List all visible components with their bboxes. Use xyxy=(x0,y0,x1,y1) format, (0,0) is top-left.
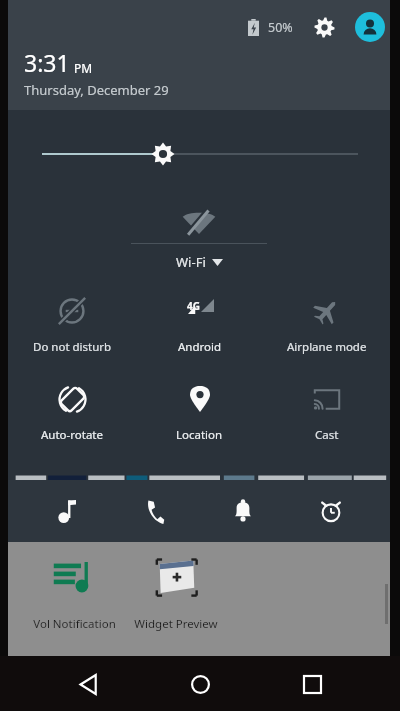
button[interactable]: User profile xyxy=(355,12,385,42)
staticText: 3:31 xyxy=(24,47,70,78)
button[interactable]: Airplane mode xyxy=(263,280,390,368)
button[interactable]: Widget Preview xyxy=(128,550,224,632)
staticText: Thursday, December 29 xyxy=(24,81,169,99)
button[interactable]: Home xyxy=(176,660,224,708)
button[interactable]: Call volume xyxy=(126,482,184,540)
staticText: Do not disturb xyxy=(33,339,112,355)
staticText: Android xyxy=(178,339,222,355)
staticText: Location xyxy=(176,427,223,443)
button[interactable]: Wi-Fi xyxy=(176,253,223,271)
button[interactable]: Battery 50 percent xyxy=(240,14,266,40)
button[interactable]: 3:31 xyxy=(24,47,169,99)
button[interactable]: Vol Notification xyxy=(26,550,122,632)
staticText: PM xyxy=(74,60,93,76)
staticText: Widget Preview xyxy=(134,616,218,632)
button[interactable]: Notification volume xyxy=(214,482,272,540)
staticText: 50% xyxy=(268,19,293,36)
staticText: Auto-rotate xyxy=(41,427,103,443)
button[interactable]: 4G xyxy=(136,280,263,368)
button[interactable]: Back xyxy=(64,660,112,708)
staticText: Wi-Fi xyxy=(176,253,206,271)
button[interactable]: Cast xyxy=(263,368,390,456)
button[interactable]: Auto-rotate xyxy=(8,368,136,456)
staticText: Cast xyxy=(315,427,339,443)
button[interactable]: Recent apps xyxy=(288,660,336,708)
staticText: Airplane mode xyxy=(287,339,367,355)
button[interactable]: Location xyxy=(136,368,263,456)
staticText: 4G xyxy=(187,299,200,313)
button[interactable]: Media volume xyxy=(38,482,96,540)
button[interactable]: Do not disturb xyxy=(8,280,136,368)
staticText: Vol Notification xyxy=(33,616,116,632)
button[interactable]: Settings xyxy=(309,12,339,42)
button[interactable]: Alarm volume xyxy=(302,482,360,540)
button[interactable]: Brightness xyxy=(8,110,390,196)
